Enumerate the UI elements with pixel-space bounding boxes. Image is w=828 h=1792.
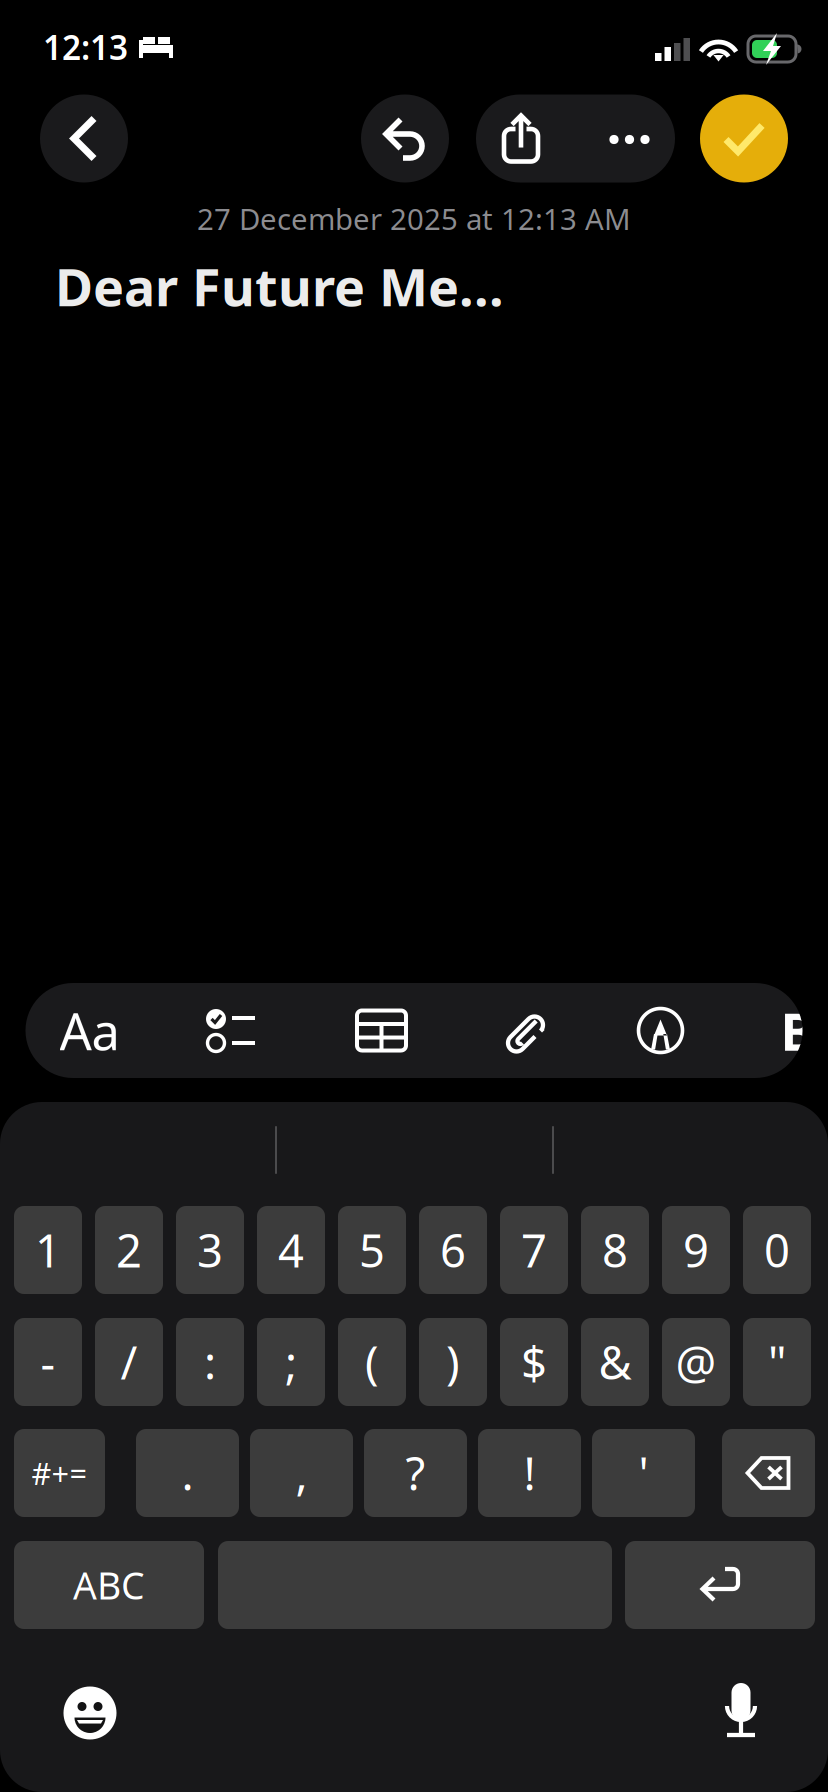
staticText: - [40, 1332, 55, 1392]
staticText: ; [285, 1332, 297, 1392]
button[interactable]: : [176, 1318, 244, 1406]
button[interactable]: , [250, 1429, 353, 1517]
button[interactable]: Done [700, 94, 788, 182]
staticText: 6 [440, 1220, 466, 1280]
button[interactable]: #+= [14, 1429, 105, 1517]
staticText: . [181, 1443, 193, 1503]
button[interactable]: 7 [500, 1206, 568, 1294]
staticText: 2 [116, 1220, 142, 1280]
button[interactable]: Share [476, 94, 568, 182]
staticText: @ [675, 1332, 716, 1392]
button[interactable]: " [743, 1318, 811, 1406]
button[interactable]: $ [500, 1318, 568, 1406]
staticText: ( [365, 1332, 379, 1392]
button[interactable]: 2 [95, 1206, 163, 1294]
staticText: #+= [31, 1453, 87, 1493]
button[interactable]: More options [568, 94, 675, 182]
staticText: 9 [683, 1220, 709, 1280]
staticText: ABC [73, 1560, 145, 1610]
button[interactable]: Dictate [701, 1671, 781, 1751]
button[interactable]: 1 [14, 1206, 82, 1294]
staticText: ! [523, 1443, 535, 1503]
staticText: 27 December 2025 at 12:13 AM [197, 199, 631, 238]
button[interactable]: ABC [14, 1541, 204, 1629]
staticText: : [204, 1332, 216, 1392]
staticText: B [780, 996, 815, 1065]
button[interactable]: 5 [338, 1206, 406, 1294]
button[interactable]: Attach file [469, 983, 581, 1078]
staticText: 0 [764, 1220, 790, 1280]
button[interactable]: . [136, 1429, 239, 1517]
button[interactable]: Delete [722, 1429, 815, 1517]
staticText: Dear Future Me... [55, 251, 504, 321]
button[interactable]: Emoji [50, 1673, 130, 1753]
button[interactable]: ( [338, 1318, 406, 1406]
button[interactable]: & [581, 1318, 649, 1406]
button[interactable]: 6 [419, 1206, 487, 1294]
staticText: ) [446, 1332, 460, 1392]
staticText: $ [521, 1332, 547, 1392]
staticText: 4 [278, 1220, 304, 1280]
button[interactable]: ' [592, 1429, 695, 1517]
button[interactable]: Checklist [175, 983, 287, 1078]
button[interactable]: Undo [361, 94, 449, 182]
button[interactable]: 8 [581, 1206, 649, 1294]
staticText: & [598, 1332, 631, 1392]
staticText: 7 [521, 1220, 547, 1280]
staticText: 12:13 [43, 25, 128, 69]
button[interactable]: 3 [176, 1206, 244, 1294]
staticText: / [120, 1332, 137, 1392]
staticText: 3 [197, 1220, 223, 1280]
button[interactable]: Format text [33, 983, 145, 1078]
button[interactable]: ? [364, 1429, 467, 1517]
staticText: Aa [59, 997, 119, 1064]
button[interactable]: Markup [604, 983, 716, 1078]
button[interactable]: - [14, 1318, 82, 1406]
staticText: 5 [359, 1220, 385, 1280]
staticText: 1 [35, 1220, 61, 1280]
button[interactable]: ) [419, 1318, 487, 1406]
button[interactable]: Bold [780, 983, 826, 1078]
button[interactable]: 9 [662, 1206, 730, 1294]
button[interactable]: ! [478, 1429, 581, 1517]
button[interactable]: @ [662, 1318, 730, 1406]
staticText: , [295, 1443, 307, 1503]
button[interactable]: 0 [743, 1206, 811, 1294]
staticText: 8 [602, 1220, 628, 1280]
button[interactable]: 4 [257, 1206, 325, 1294]
button[interactable]: Table [325, 983, 437, 1078]
button[interactable]: ; [257, 1318, 325, 1406]
staticText: ? [405, 1443, 425, 1503]
staticText: " [768, 1332, 786, 1392]
button[interactable]: Return [625, 1541, 815, 1629]
staticText: ' [638, 1443, 648, 1503]
button[interactable]: Back [40, 94, 128, 182]
button[interactable]: / [95, 1318, 163, 1406]
